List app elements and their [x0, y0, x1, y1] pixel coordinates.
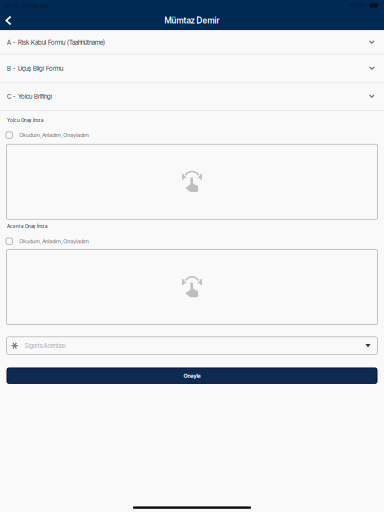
staticText: Yolcu Onay İmza	[7, 117, 44, 123]
button[interactable]: Onayla	[7, 368, 377, 383]
staticText: Okudum, Anladım, Onayladım	[19, 238, 89, 244]
staticText: %100	[355, 2, 367, 9]
staticText: Sigorta Acentası	[24, 342, 65, 349]
staticText: B - Uçuş Bilgi Formu	[7, 64, 63, 72]
button[interactable]: Signature area	[6, 144, 377, 219]
staticText: Onayla	[183, 372, 200, 379]
button[interactable]: Okudum, Anladım, Onayladım	[0, 131, 384, 139]
button[interactable]: B - Uçuş Bilgi Formu	[0, 55, 384, 83]
staticText: A - Risk Kabul Formu (Taahhütname)	[7, 38, 105, 46]
staticText: 09:35 5 Aralık Sal	[5, 2, 47, 9]
button[interactable]: Sigorta Acentası	[6, 337, 377, 355]
staticText: C - Yolcu Brifingi	[7, 92, 52, 100]
button[interactable]: Okudum, Anladım, Onayladım	[0, 238, 384, 245]
button[interactable]: Signature area	[6, 250, 377, 325]
staticText: Okudum, Anladım, Onayladım	[19, 132, 89, 138]
staticText: Acenta Onay İmza	[7, 224, 48, 229]
button[interactable]: Back	[0, 11, 17, 30]
staticText: Mümtaz Demir	[164, 15, 219, 25]
button[interactable]: A - Risk Kabul Formu (Taahhütname)	[0, 31, 384, 55]
button[interactable]: C - Yolcu Brifingi	[0, 83, 384, 111]
